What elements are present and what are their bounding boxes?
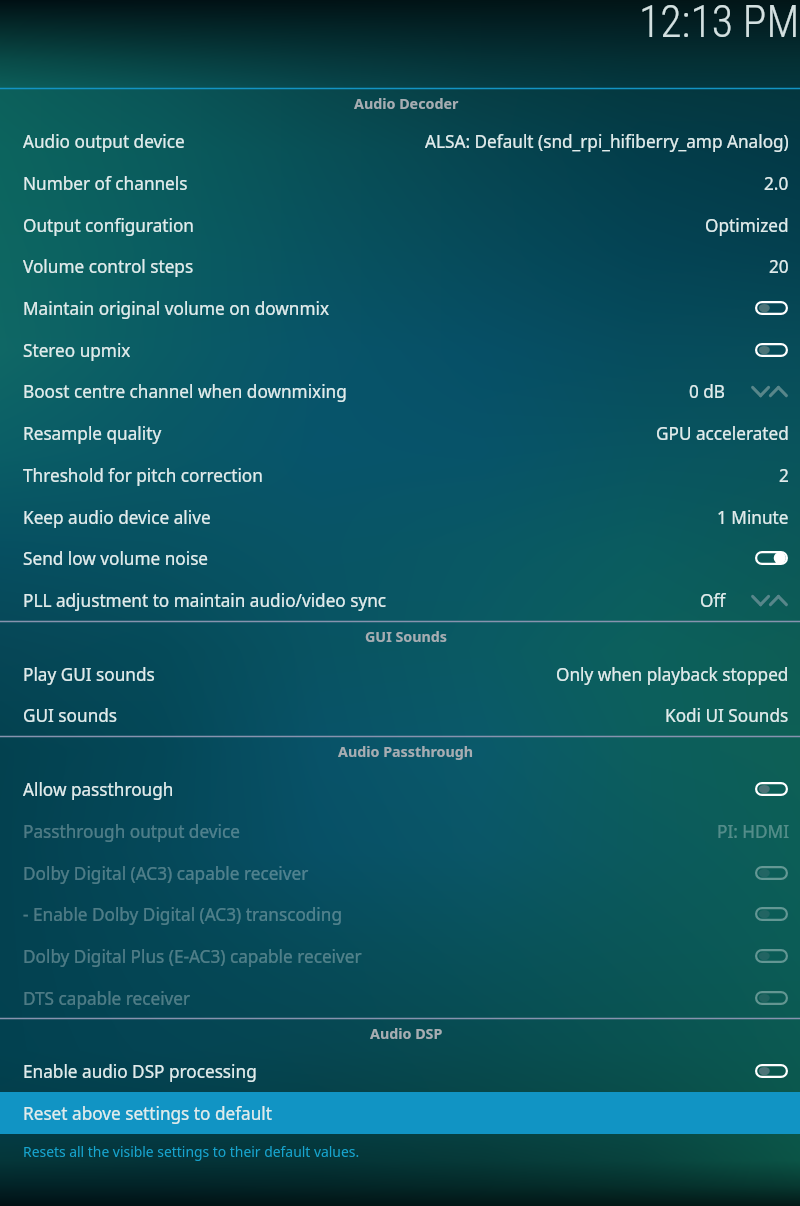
staticText: Threshold for pitch correction bbox=[23, 464, 263, 487]
button[interactable]: Passthrough output device bbox=[0, 810, 800, 852]
staticText: 1 Minute bbox=[717, 506, 789, 529]
button[interactable]: Stereo upmix bbox=[0, 329, 800, 371]
button[interactable]: Keep audio device alive bbox=[0, 496, 800, 538]
other: Adjust value bbox=[751, 385, 789, 398]
staticText: 12:13 PM bbox=[639, 0, 800, 47]
staticText: Audio Decoder bbox=[354, 94, 459, 113]
staticText: Boost centre channel when downmixing bbox=[23, 380, 347, 403]
other: Toggle off bbox=[755, 866, 788, 880]
staticText: Only when playback stopped bbox=[556, 663, 789, 686]
button[interactable]: Number of channels bbox=[0, 162, 800, 204]
staticText: Stereo upmix bbox=[23, 339, 131, 362]
button[interactable]: GUI sounds bbox=[0, 694, 800, 736]
staticText: Output configuration bbox=[23, 214, 194, 237]
staticText: ALSA: Default (snd_rpi_hifiberry_amp Ana… bbox=[425, 130, 789, 153]
staticText: Send low volume noise bbox=[23, 547, 209, 570]
staticText: Volume control steps bbox=[23, 255, 194, 278]
other: Toggle off bbox=[755, 301, 788, 315]
staticText: Audio Passthrough bbox=[338, 742, 474, 761]
button[interactable]: Dolby Digital (AC3) capable receiver bbox=[0, 852, 800, 894]
button[interactable]: - Enable Dolby Digital (AC3) transcoding bbox=[0, 893, 800, 935]
staticText: Kodi UI Sounds bbox=[665, 704, 789, 727]
staticText: Audio DSP bbox=[370, 1024, 443, 1043]
button[interactable]: Volume control steps bbox=[0, 245, 800, 287]
staticText: - Enable Dolby Digital (AC3) transcoding bbox=[23, 903, 342, 926]
button[interactable]: Send low volume noise bbox=[0, 537, 800, 579]
staticText: GPU accelerated bbox=[656, 422, 789, 445]
other: Toggle off bbox=[755, 782, 788, 796]
staticText: DTS capable receiver bbox=[23, 987, 191, 1010]
staticText: Keep audio device alive bbox=[23, 506, 211, 529]
staticText: Resets all the visible settings to their… bbox=[23, 1142, 360, 1161]
staticText: 2.0 bbox=[764, 172, 789, 195]
button[interactable]: PLL adjustment to maintain audio/video s… bbox=[0, 579, 800, 621]
other: Toggle off bbox=[755, 907, 788, 921]
other: Toggle off bbox=[755, 991, 788, 1005]
staticText: Off bbox=[700, 589, 726, 612]
staticText: Reset above settings to default bbox=[23, 1102, 272, 1125]
staticText: Enable audio DSP processing bbox=[23, 1060, 257, 1083]
button[interactable]: Resample quality bbox=[0, 412, 800, 454]
other: Toggle off bbox=[755, 343, 788, 357]
button[interactable]: Boost centre channel when downmixing bbox=[0, 370, 800, 412]
staticText: GUI sounds bbox=[23, 704, 118, 727]
button[interactable]: Reset above settings to default bbox=[0, 1092, 800, 1134]
button[interactable]: Output configuration bbox=[0, 204, 800, 246]
staticText: Passthrough output device bbox=[23, 820, 240, 843]
staticText: 2 bbox=[779, 464, 789, 487]
staticText: Play GUI sounds bbox=[23, 663, 155, 686]
staticText: Optimized bbox=[705, 214, 789, 237]
staticText: 20 bbox=[769, 255, 789, 278]
button[interactable]: Allow passthrough bbox=[0, 768, 800, 810]
staticText: Maintain original volume on downmix bbox=[23, 297, 330, 320]
button[interactable]: Dolby Digital Plus (E-AC3) capable recei… bbox=[0, 935, 800, 977]
button[interactable]: Maintain original volume on downmix bbox=[0, 287, 800, 329]
staticText: Dolby Digital Plus (E-AC3) capable recei… bbox=[23, 945, 362, 968]
other: Toggle on bbox=[755, 551, 788, 565]
staticText: GUI Sounds bbox=[365, 627, 448, 646]
staticText: Allow passthrough bbox=[23, 778, 174, 801]
staticText: Audio output device bbox=[23, 130, 185, 153]
button[interactable]: DTS capable receiver bbox=[0, 977, 800, 1019]
button[interactable]: Play GUI sounds bbox=[0, 653, 800, 695]
button[interactable]: Audio output device bbox=[0, 120, 800, 162]
staticText: Number of channels bbox=[23, 172, 188, 195]
staticText: Resample quality bbox=[23, 422, 162, 445]
staticText: Dolby Digital (AC3) capable receiver bbox=[23, 862, 309, 885]
button[interactable]: Threshold for pitch correction bbox=[0, 454, 800, 496]
staticText: 0 dB bbox=[689, 380, 726, 403]
other: Toggle off bbox=[755, 949, 788, 963]
button[interactable]: Enable audio DSP processing bbox=[0, 1050, 800, 1092]
staticText: PLL adjustment to maintain audio/video s… bbox=[23, 589, 387, 612]
other: Adjust value bbox=[751, 594, 789, 607]
other: Toggle off bbox=[755, 1064, 788, 1078]
staticText: PI: HDMI bbox=[717, 820, 789, 843]
